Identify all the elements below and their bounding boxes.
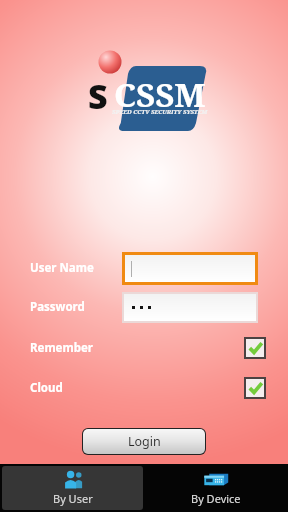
staticText: Password [30, 299, 85, 315]
button[interactable]: Login [83, 429, 205, 454]
button[interactable]: Remember [0, 336, 288, 360]
button[interactable] [125, 255, 255, 282]
staticText: Remember [30, 340, 93, 356]
staticText: By Device [191, 491, 241, 506]
button[interactable]: By Device [145, 466, 286, 510]
staticText: Cloud [30, 380, 63, 396]
button[interactable]: By User [2, 466, 143, 510]
staticText: By User [53, 491, 93, 506]
staticText: CSSM [114, 72, 206, 117]
staticText: User Name [30, 260, 94, 276]
button[interactable] [124, 294, 256, 321]
staticText: S [88, 73, 108, 119]
staticText: Login [128, 433, 161, 450]
button[interactable]: Cloud [0, 376, 288, 400]
staticText: SPEED CCTV SECURITY SYSTEM [112, 108, 208, 116]
